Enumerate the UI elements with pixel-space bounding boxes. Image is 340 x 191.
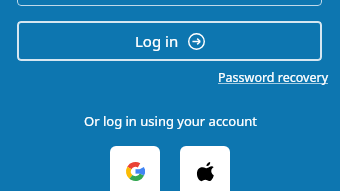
staticText: Log in xyxy=(135,31,179,51)
button[interactable] xyxy=(17,0,322,6)
button[interactable]: Password recovery xyxy=(214,67,333,88)
staticText: Or log in using your account xyxy=(84,112,257,130)
button[interactable]: Log in xyxy=(17,21,322,61)
staticText: Password recovery xyxy=(218,69,329,86)
button[interactable]: Sign in with Apple xyxy=(180,146,230,191)
button[interactable]: Sign in with Google xyxy=(110,146,160,191)
